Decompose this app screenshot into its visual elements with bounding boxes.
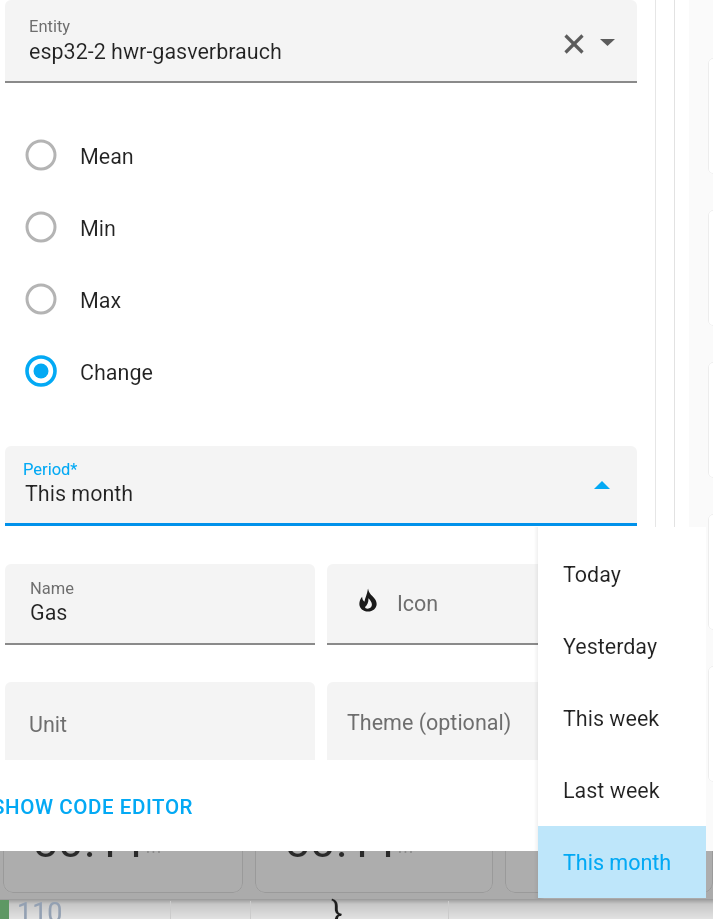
button[interactable]: Entity (5, 0, 637, 81)
button[interactable]: Today (538, 538, 706, 610)
staticText: esp32-2 hwr-gasverbrauch (29, 39, 282, 64)
button[interactable]: Name (5, 564, 315, 643)
button[interactable]: Max (0, 276, 300, 322)
staticText: Today (563, 562, 621, 587)
button[interactable]: Last week (538, 754, 706, 826)
button[interactable]: Show entity options (596, 32, 622, 58)
staticText: This month (563, 850, 672, 875)
staticText: Yesterday (563, 634, 658, 659)
staticText: Icon (397, 591, 439, 616)
button[interactable]: Unit (5, 682, 315, 760)
staticText: Max (80, 288, 122, 313)
button[interactable]: This week (538, 682, 706, 754)
staticText: 50.11 (284, 814, 400, 868)
button[interactable]: SHOW CODE EDITOR (0, 789, 222, 825)
button[interactable]: Mean (0, 132, 300, 178)
button[interactable]: Period* (5, 446, 637, 523)
button[interactable]: Icon (327, 564, 638, 643)
button[interactable]: Clear (558, 28, 590, 60)
staticText: Mean (80, 144, 134, 169)
staticText: Entity (29, 17, 71, 36)
button[interactable]: Change (0, 348, 300, 394)
staticText: Unit (29, 712, 68, 737)
staticText: Gas (30, 600, 68, 625)
button[interactable]: Collapse period options (589, 472, 615, 498)
staticText: m (398, 837, 413, 857)
staticText: 110 (17, 897, 63, 919)
button[interactable]: Min (0, 204, 300, 250)
staticText: Min (80, 216, 116, 241)
button[interactable]: This month (538, 826, 706, 898)
staticText: Change (80, 360, 153, 385)
staticText: This week (563, 706, 660, 731)
staticText: SHOW CODE EDITOR (0, 795, 194, 819)
staticText: Theme (optional) (347, 710, 512, 735)
button[interactable]: Theme (optional) (327, 682, 638, 760)
staticText: Name (30, 579, 74, 598)
staticText: Period* (23, 460, 78, 479)
staticText: m (146, 837, 161, 857)
staticText: 50.11 (32, 814, 148, 868)
staticText: Last week (563, 778, 660, 803)
staticText: } (331, 893, 343, 919)
button[interactable]: Yesterday (538, 610, 706, 682)
staticText: This month (25, 481, 134, 506)
